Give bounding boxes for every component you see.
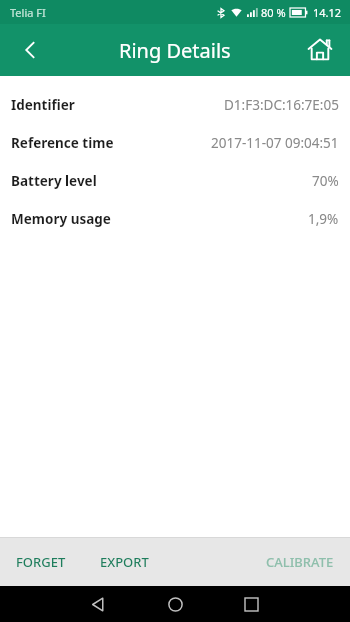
staticText: 14.12 <box>313 5 342 20</box>
button[interactable]: CALIBRATE <box>256 545 344 579</box>
button[interactable]: Back <box>6 26 54 74</box>
button[interactable]: Back <box>78 586 116 622</box>
staticText: EXPORT <box>100 553 149 571</box>
staticText: 2017-11-07 09:04:51 <box>211 134 339 152</box>
staticText: Battery level <box>11 172 97 190</box>
button[interactable]: Battery level <box>0 162 350 200</box>
staticText: CALIBRATE <box>266 553 334 571</box>
button[interactable]: Recent apps <box>232 586 270 622</box>
staticText: Telia FI <box>10 5 46 20</box>
staticText: Reference time <box>11 134 114 152</box>
staticText: Ring Details <box>119 37 231 64</box>
staticText: FORGET <box>16 553 66 571</box>
staticText: 1,9% <box>308 210 339 228</box>
button[interactable]: Home <box>296 26 344 74</box>
button[interactable]: Memory usage <box>0 200 350 238</box>
staticText: D1:F3:DC:16:7E:05 <box>224 96 339 114</box>
button[interactable]: FORGET <box>6 545 76 579</box>
staticText: Identifier <box>11 96 75 114</box>
button[interactable]: Identifier <box>0 86 350 124</box>
staticText: Memory usage <box>11 210 111 228</box>
button[interactable]: EXPORT <box>90 545 159 579</box>
button[interactable]: Home <box>156 586 194 622</box>
staticText: 80 % <box>261 5 286 20</box>
button[interactable]: Reference time <box>0 124 350 162</box>
staticText: 70% <box>312 172 339 190</box>
